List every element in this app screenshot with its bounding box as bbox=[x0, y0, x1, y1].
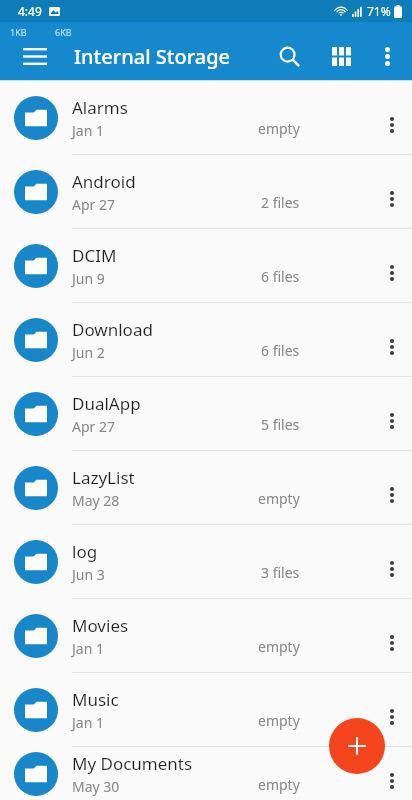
button[interactable]: Item options for Movies bbox=[372, 623, 412, 663]
staticText: log bbox=[72, 540, 98, 563]
button[interactable]: Alarms bbox=[0, 81, 412, 154]
staticText: Apr 27 bbox=[72, 417, 115, 436]
button[interactable]: Item options for LazyList bbox=[372, 475, 412, 515]
staticText: 6KB bbox=[55, 26, 72, 38]
button[interactable]: Download bbox=[0, 303, 412, 376]
staticText: 4:49 bbox=[18, 3, 42, 19]
button[interactable]: Item options for log bbox=[372, 549, 412, 589]
button[interactable]: Item options for My Documents bbox=[372, 761, 412, 800]
button[interactable]: Search bbox=[266, 33, 312, 79]
button[interactable]: LazyList bbox=[0, 451, 412, 524]
staticText: Jan 1 bbox=[72, 639, 104, 658]
staticText: 3 files bbox=[261, 563, 300, 582]
staticText: Jan 1 bbox=[72, 713, 104, 732]
staticText: empty bbox=[258, 489, 300, 508]
staticText: DualApp bbox=[72, 392, 141, 415]
staticText: Internal Storage bbox=[74, 43, 231, 70]
staticText: Download bbox=[72, 318, 153, 341]
staticText: Music bbox=[72, 688, 119, 711]
button[interactable]: log bbox=[0, 525, 412, 598]
staticText: Alarms bbox=[72, 96, 128, 119]
button[interactable]: Movies bbox=[0, 599, 412, 672]
staticText: May 30 bbox=[72, 777, 120, 796]
staticText: 71% bbox=[367, 3, 391, 19]
button[interactable]: More options bbox=[366, 35, 408, 77]
staticText: LazyList bbox=[72, 466, 135, 489]
button[interactable]: Item options for Android bbox=[372, 179, 412, 219]
button[interactable]: Android bbox=[0, 155, 412, 228]
button[interactable]: Item options for Download bbox=[372, 327, 412, 367]
staticText: Jun 9 bbox=[72, 269, 105, 288]
staticText: My Documents bbox=[72, 752, 193, 775]
staticText: Movies bbox=[72, 614, 129, 637]
button[interactable]: Item options for Alarms bbox=[372, 105, 412, 145]
button[interactable]: My Documents bbox=[0, 747, 412, 800]
staticText: 6 files bbox=[261, 267, 300, 286]
staticText: empty bbox=[258, 119, 300, 138]
staticText: empty bbox=[258, 637, 300, 656]
staticText: Apr 27 bbox=[72, 195, 115, 214]
button[interactable]: Item options for Music bbox=[372, 697, 412, 737]
button[interactable]: Open navigation menu bbox=[14, 35, 56, 77]
staticText: empty bbox=[258, 711, 300, 730]
staticText: DCIM bbox=[72, 244, 117, 267]
staticText: Android bbox=[72, 170, 136, 193]
button[interactable]: Item options for DualApp bbox=[372, 401, 412, 441]
staticText: Jun 2 bbox=[72, 343, 105, 362]
staticText: 6 files bbox=[261, 341, 300, 360]
button[interactable]: Grid view bbox=[318, 33, 364, 79]
staticText: 1KB bbox=[10, 26, 27, 38]
staticText: Jun 3 bbox=[72, 565, 105, 584]
button[interactable]: Music bbox=[0, 673, 412, 746]
staticText: empty bbox=[258, 775, 300, 794]
button[interactable]: Item options for DCIM bbox=[372, 253, 412, 293]
button[interactable]: DualApp bbox=[0, 377, 412, 450]
button[interactable]: DCIM bbox=[0, 229, 412, 302]
staticText: 2 files bbox=[261, 193, 300, 212]
staticText: Jan 1 bbox=[72, 121, 104, 140]
staticText: 5 files bbox=[261, 415, 300, 434]
staticText: May 28 bbox=[72, 491, 120, 510]
button[interactable]: Create new bbox=[329, 718, 385, 774]
